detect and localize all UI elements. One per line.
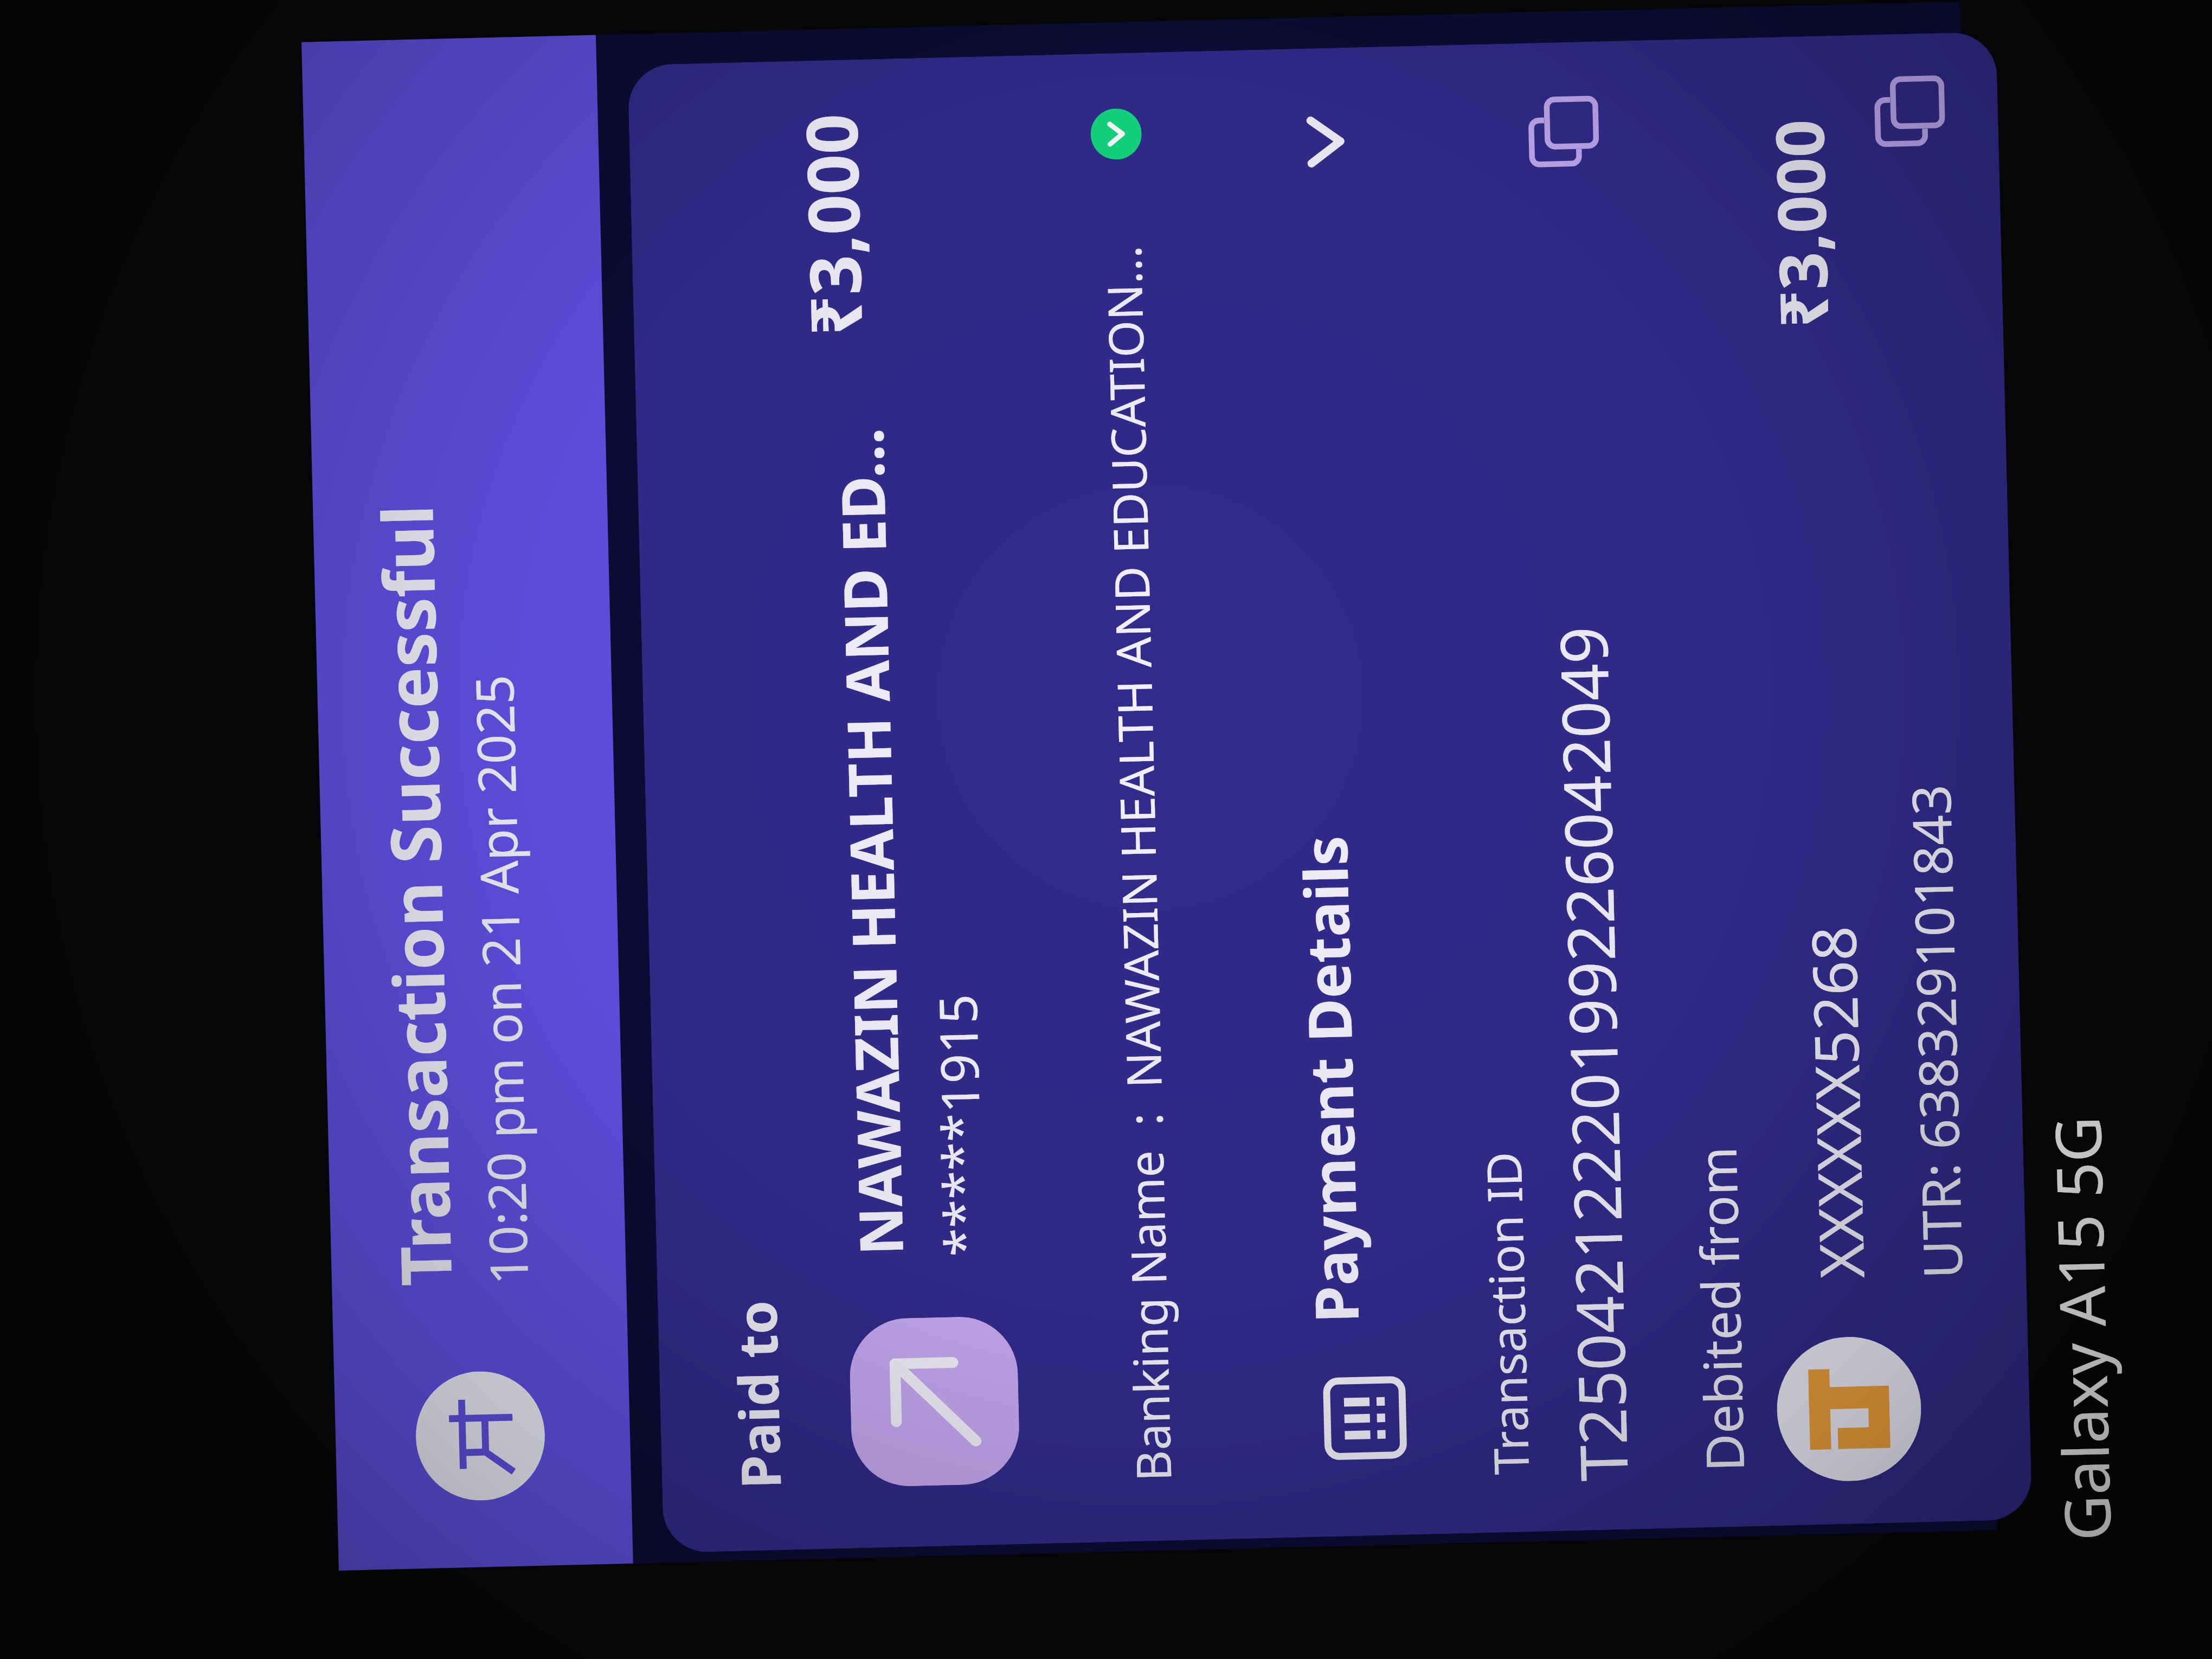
staticText: Payment Details xyxy=(1283,835,1376,1324)
staticText: ₹3,000 xyxy=(1753,118,1848,329)
staticText: T2504212220199226042049 xyxy=(1538,625,1647,1482)
button[interactable] xyxy=(807,102,1031,1505)
button[interactable]: Transaction Successful xyxy=(301,35,633,1571)
staticText: Paid to xyxy=(718,1300,797,1490)
staticText: Transaction ID xyxy=(1470,1151,1543,1476)
staticText: Galaxy A15 5G xyxy=(2033,1115,2129,1542)
staticText: 10:20 pm on 21 Apr 2025 xyxy=(457,674,543,1286)
button[interactable]: Copy UTR xyxy=(1871,72,1949,150)
button[interactable]: Payment details xyxy=(1306,115,1346,168)
button[interactable] xyxy=(1252,93,1427,1494)
staticText: ₹3,000 xyxy=(782,113,883,337)
button[interactable]: Copy transaction id xyxy=(1525,92,1603,170)
button[interactable] xyxy=(848,1315,1021,1488)
staticText: NAWAZIN HEALTH AND ED... xyxy=(819,427,921,1256)
staticText: Transaction Successful xyxy=(358,504,472,1287)
staticText: Banking Name : NAWAZIN HEALTH AND EDUCAT… xyxy=(1090,245,1185,1482)
staticText: *****1915 xyxy=(921,993,998,1257)
staticText: XXXXXX5268 xyxy=(1791,925,1882,1279)
staticText: Debited from xyxy=(1681,1146,1759,1473)
staticText: UTR: 638329101843 xyxy=(1893,784,1978,1280)
button[interactable]: Open details xyxy=(1090,108,1142,160)
